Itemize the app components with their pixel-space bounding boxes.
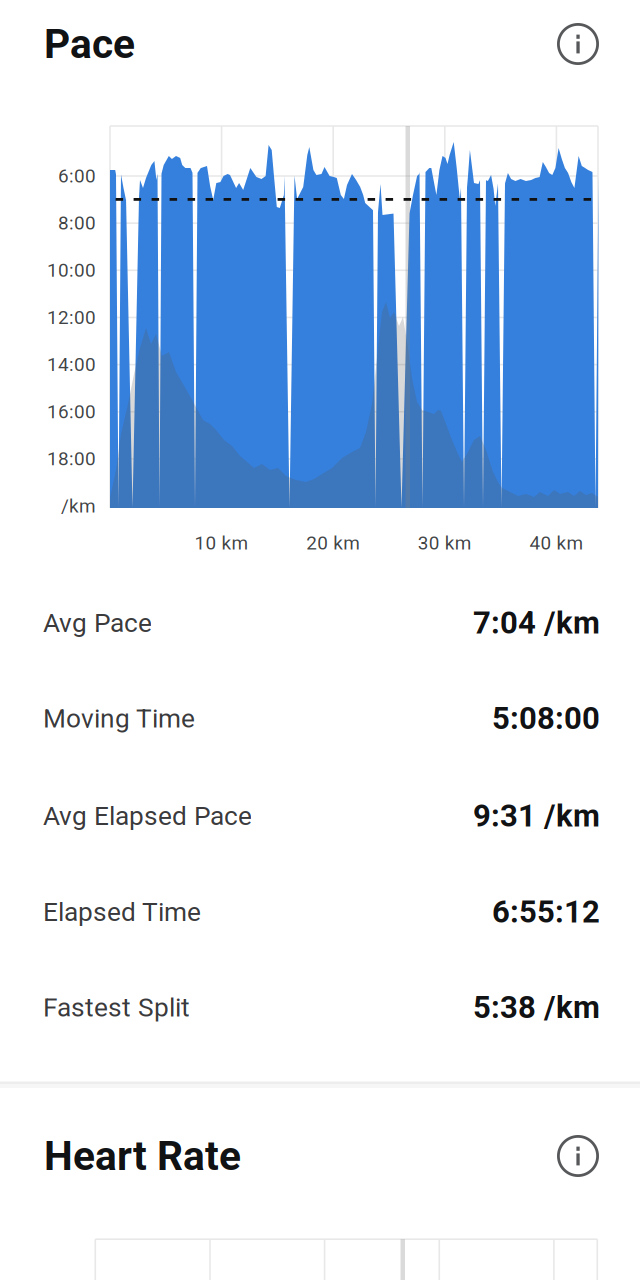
staticText: 18:00 xyxy=(47,448,96,470)
staticText: Avg Pace xyxy=(43,608,152,638)
staticText: 10 km xyxy=(195,532,249,554)
staticText: 5:38 /km xyxy=(473,989,600,1026)
staticText: 14:00 xyxy=(47,353,96,376)
staticText: 6:55:12 xyxy=(492,894,600,930)
staticText: Heart Rate xyxy=(44,1132,241,1180)
staticText: /km xyxy=(61,495,96,517)
staticText: 7:04 /km xyxy=(473,605,600,641)
staticText: 12:00 xyxy=(47,306,96,329)
button[interactable]: Info xyxy=(555,1133,601,1179)
button[interactable]: Moving Time xyxy=(0,670,640,766)
staticText: Fastest Split xyxy=(43,992,190,1023)
button[interactable]: Fastest Split xyxy=(0,959,640,1055)
staticText: 20 km xyxy=(306,532,360,554)
staticText: Pace xyxy=(44,20,135,68)
button[interactable]: Info xyxy=(555,21,601,67)
staticText: 5:08:00 xyxy=(492,700,600,737)
staticText: Avg Elapsed Pace xyxy=(43,801,252,831)
staticText: 9:31 /km xyxy=(473,798,600,834)
staticText: 40 km xyxy=(529,532,583,554)
staticText: 8:00 xyxy=(58,212,96,234)
staticText: Moving Time xyxy=(43,703,195,734)
staticText: 10:00 xyxy=(47,259,96,281)
button[interactable]: Elapsed Time xyxy=(0,864,640,960)
button[interactable]: Avg Elapsed Pace xyxy=(0,768,640,864)
staticText: 16:00 xyxy=(47,401,96,423)
staticText: 30 km xyxy=(418,532,472,554)
staticText: Elapsed Time xyxy=(43,897,201,927)
staticText: 6:00 xyxy=(58,165,96,187)
button[interactable]: Avg Pace xyxy=(0,575,640,671)
